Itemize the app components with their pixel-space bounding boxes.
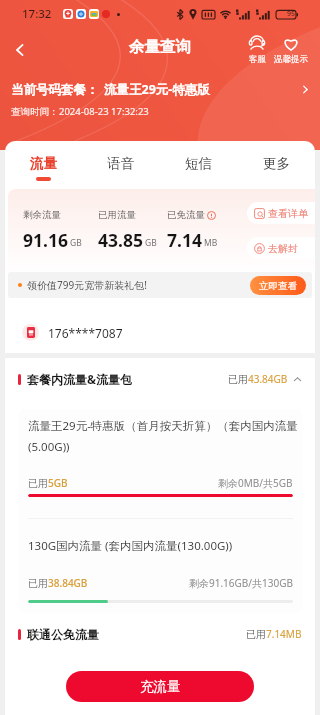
staticText: 130G国内流量 (套内国内流量(130.00G)) — [28, 538, 233, 554]
button[interactable]: 领价值799元宽带新装礼包! — [8, 272, 312, 298]
staticText: 已用 — [246, 628, 266, 641]
button[interactable]: 当前号码套餐： — [11, 81, 314, 98]
button[interactable]: 立即查看 — [250, 276, 306, 295]
staticText: 查询时间： — [11, 106, 59, 118]
staticText: 充流量 — [140, 678, 181, 695]
staticText: 剩余91.16GB/共130GB — [189, 576, 293, 590]
button[interactable]: 语音 — [82, 141, 159, 189]
staticText: 去解封 — [268, 242, 298, 255]
button[interactable]: 短信 — [159, 141, 237, 189]
staticText: 流量 — [30, 155, 57, 172]
staticText: 91.16 — [23, 228, 68, 252]
staticText: 更多 — [263, 155, 290, 172]
staticText: 95 — [287, 9, 296, 19]
button[interactable]: 返回 — [4, 34, 36, 66]
staticText: GB — [70, 237, 82, 249]
staticText: 温馨提示 — [274, 54, 308, 65]
staticText: 语音 — [107, 155, 134, 172]
button[interactable]: 联通公免流量 — [18, 624, 302, 644]
staticText: MB — [204, 237, 218, 249]
staticText: GB — [145, 237, 157, 249]
button[interactable]: 流量 — [5, 141, 82, 189]
staticText: 43.84GB — [248, 372, 288, 386]
staticText: 176****7087 — [48, 325, 123, 341]
staticText: 余量查询 — [129, 37, 191, 57]
button[interactable]: 套餐内流量&流量包 — [18, 369, 302, 389]
staticText: 已用 — [28, 477, 48, 490]
button[interactable]: 更多 — [237, 141, 315, 189]
staticText: 5GB — [48, 476, 68, 490]
staticText: 套餐内流量&流量包 — [27, 371, 133, 387]
staticText: 已免流量 — [167, 209, 205, 221]
button[interactable]: 去解封 — [247, 237, 315, 259]
staticText: 领价值799元宽带新装礼包! — [27, 278, 147, 292]
button[interactable]: 客服 — [246, 35, 268, 65]
staticText: 已用流量 — [98, 209, 136, 221]
staticText: 已用 — [228, 373, 248, 386]
button[interactable]: 176****7087 — [7, 313, 313, 352]
staticText: 立即查看 — [259, 280, 297, 292]
staticText: 流量王29元-特惠版（首月按天折算）（套内国内流量 (5.00G)) — [28, 418, 299, 454]
staticText: 38.84GB — [48, 576, 88, 590]
staticText: 剩余0MB/共5GB — [218, 476, 293, 490]
staticText: 2024-08-23 17:32:23 — [59, 105, 149, 118]
button[interactable]: 温馨提示 — [272, 35, 310, 65]
staticText: 17:32 — [22, 6, 52, 22]
staticText: 短信 — [185, 155, 212, 172]
staticText: 当前号码套餐： — [11, 82, 99, 98]
staticText: 联通公免流量 — [27, 627, 99, 642]
staticText: 43.85 — [98, 228, 143, 252]
button[interactable]: 查看详单 — [247, 202, 315, 224]
button[interactable]: 充流量 — [66, 671, 254, 702]
staticText: 客服 — [249, 54, 266, 65]
staticText: 查看详单 — [268, 207, 308, 220]
staticText: 流量王29元-特惠版 — [104, 81, 210, 98]
staticText: 剩余流量 — [23, 209, 61, 221]
staticText: 已用 — [28, 577, 48, 590]
staticText: 7.14 — [167, 228, 202, 252]
staticText: 7.14MB — [266, 627, 302, 641]
